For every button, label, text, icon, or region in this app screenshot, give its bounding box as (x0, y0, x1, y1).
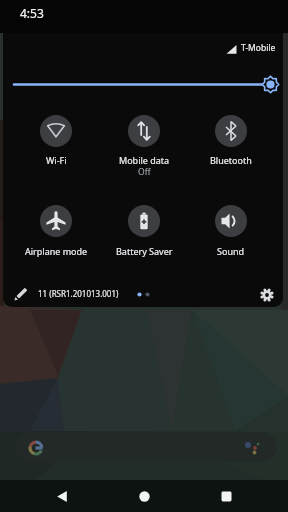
button[interactable]: Sound (186, 205, 276, 257)
button[interactable]: Wi-Fi (11, 115, 101, 166)
staticText: Wi-Fi (46, 154, 67, 166)
button[interactable]: Bluetooth (186, 115, 276, 166)
button[interactable] (10, 284, 31, 305)
button[interactable] (0, 60, 288, 110)
button[interactable] (198, 480, 254, 512)
button[interactable] (116, 480, 172, 512)
staticText: Off (138, 166, 151, 178)
staticText: Sound (217, 245, 245, 257)
button[interactable] (34, 480, 90, 512)
staticText: Mobile data (119, 154, 170, 166)
button[interactable] (257, 285, 277, 305)
button[interactable]: Mobile data (99, 115, 189, 178)
staticText: Bluetooth (210, 154, 252, 166)
staticText: 4:53 (20, 5, 44, 21)
staticText: Battery Saver (116, 245, 173, 257)
staticText: T-Mobile (241, 42, 276, 54)
button[interactable]: Airplane mode (11, 205, 101, 257)
staticText: Airplane mode (25, 245, 88, 257)
button[interactable] (15, 432, 277, 462)
staticText: 11 (RSR1.201013.001) (38, 288, 119, 299)
button[interactable]: Battery Saver (99, 205, 189, 257)
